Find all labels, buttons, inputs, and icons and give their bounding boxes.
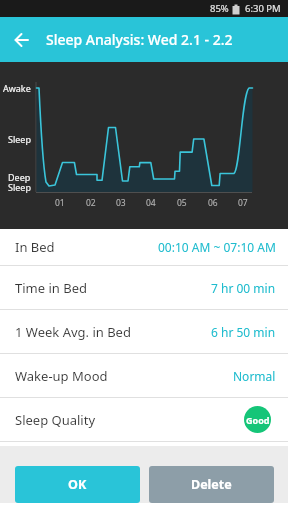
staticText: Sleep Analysis: Wed 2.1 - 2.2 <box>46 30 233 49</box>
staticText: 01 <box>55 197 65 209</box>
staticText: Normal <box>233 368 276 384</box>
staticText: Delete <box>191 476 232 493</box>
staticText: Sleep <box>8 133 31 145</box>
staticText: 1 Week Avg. in Bed <box>15 323 131 341</box>
staticText: 04 <box>146 197 156 209</box>
staticText: 07 <box>238 197 248 209</box>
staticText: Time in Bed <box>15 279 87 297</box>
staticText: 02 <box>86 197 96 209</box>
staticText: 06 <box>208 197 218 209</box>
staticText: Awake <box>3 82 31 94</box>
staticText: In Bed <box>15 238 55 256</box>
staticText: Wake-up Mood <box>15 367 108 385</box>
staticText: Sleep Quality <box>15 411 96 429</box>
staticText: 85% <box>210 2 229 15</box>
staticText: 6 hr 50 min <box>211 324 276 340</box>
staticText: 03 <box>116 197 126 209</box>
staticText: Deep <box>8 171 31 183</box>
button[interactable] <box>0 18 44 62</box>
staticText: Sleep <box>8 181 31 193</box>
staticText: 6:30 PM <box>245 2 281 15</box>
staticText: Good <box>246 414 270 426</box>
staticText: 00:10 AM ~ 07:10 AM <box>158 239 276 255</box>
button[interactable]: OK <box>15 466 140 503</box>
button[interactable]: Good <box>244 406 271 433</box>
button[interactable]: Delete <box>149 466 274 503</box>
staticText: 05 <box>177 197 187 209</box>
staticText: 7 hr 00 min <box>211 280 276 296</box>
staticText: OK <box>68 476 87 493</box>
